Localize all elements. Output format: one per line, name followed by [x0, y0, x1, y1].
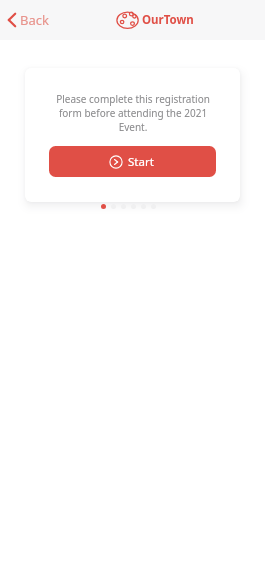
button[interactable]: Go to page 1 — [101, 204, 106, 209]
button[interactable]: Back — [5, 6, 51, 34]
staticText: Back — [20, 11, 49, 29]
staticText: OurTown — [142, 12, 194, 28]
staticText: Start — [128, 154, 154, 170]
staticText: Please complete this registration form b… — [55, 92, 211, 134]
button[interactable]: Start — [49, 146, 216, 177]
button[interactable]: OurTown — [116, 10, 194, 30]
